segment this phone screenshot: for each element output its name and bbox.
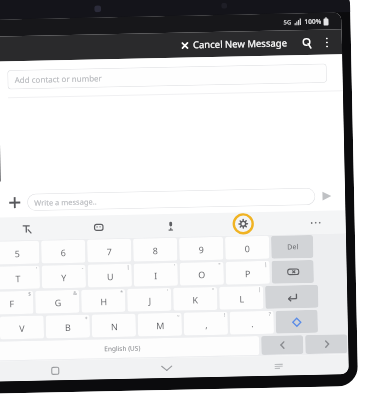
- button[interactable]: B: [46, 315, 90, 338]
- button[interactable]: Keyboard settings: [232, 213, 254, 234]
- staticText: !: [224, 312, 226, 319]
- button[interactable]: Write a message..: [27, 188, 315, 211]
- button[interactable]: F: [0, 291, 34, 315]
- staticText: 100%: [304, 17, 322, 26]
- button[interactable]: Del: [271, 235, 313, 259]
- button[interactable]: .: [230, 311, 274, 335]
- button[interactable]: Y: [42, 265, 86, 289]
- staticText: Del: [287, 242, 298, 252]
- staticText: 6: [60, 246, 66, 258]
- staticText: Write a message..: [34, 196, 97, 208]
- staticText: L: [239, 292, 244, 304]
- staticText: 5G: [283, 18, 292, 26]
- staticText: 7: [106, 245, 112, 257]
- button[interactable]: Recent apps: [222, 354, 335, 377]
- staticText: *: [120, 289, 123, 296]
- button[interactable]: ,: [184, 312, 228, 336]
- staticText: Add contact or number: [14, 72, 103, 85]
- button[interactable]: G: [35, 290, 80, 314]
- staticText: V: [19, 322, 25, 334]
- staticText: J: [148, 294, 151, 306]
- staticText: U: [107, 270, 114, 282]
- staticText: ": [218, 262, 222, 269]
- staticText: O: [198, 268, 206, 280]
- button[interactable]: 5: [0, 241, 39, 264]
- button[interactable]: 0: [225, 236, 269, 260]
- staticText: ~: [177, 313, 180, 320]
- button[interactable]: P: [225, 261, 270, 285]
- staticText: .: [251, 317, 254, 329]
- staticText: 5: [14, 247, 20, 259]
- button[interactable]: 7: [87, 239, 131, 263]
- button[interactable]: J: [127, 288, 172, 312]
- button[interactable]: Add contact or number: [7, 64, 327, 89]
- staticText: G: [54, 296, 61, 308]
- staticText: ": [212, 287, 215, 294]
- button[interactable]: Voice input: [160, 216, 181, 236]
- staticText: |: [264, 261, 268, 268]
- staticText: ': [173, 263, 176, 270]
- button[interactable]: More keyboard options: [305, 213, 326, 233]
- button[interactable]: [276, 310, 318, 334]
- button[interactable]: More options: [317, 32, 337, 53]
- staticText: B: [65, 321, 71, 333]
- staticText: N: [111, 320, 118, 332]
- button[interactable]: T: [0, 266, 40, 289]
- button[interactable]: K: [173, 287, 218, 311]
- staticText: 8: [152, 244, 158, 256]
- button[interactable]: L: [219, 286, 263, 310]
- staticText: Cancel New Message: [193, 36, 287, 51]
- button[interactable]: [271, 260, 314, 284]
- button[interactable]: Cancel New Message: [177, 33, 291, 55]
- button[interactable]: Home: [0, 359, 111, 381]
- button[interactable]: Search: [297, 33, 317, 53]
- staticText: H: [100, 295, 107, 307]
- button[interactable]: 6: [41, 240, 85, 264]
- button[interactable]: 9: [179, 237, 223, 261]
- button[interactable]: M: [138, 313, 182, 337]
- staticText: ': [36, 266, 38, 273]
- staticText: F: [9, 297, 14, 309]
- staticText: $: [28, 291, 31, 298]
- button[interactable]: 8: [133, 238, 177, 262]
- button[interactable]: Stickers: [89, 217, 109, 238]
- button[interactable]: I: [133, 263, 178, 287]
- staticText: I: [154, 269, 158, 281]
- staticText: |: [258, 286, 261, 293]
- staticText: M: [156, 319, 165, 331]
- button[interactable]: U: [87, 264, 132, 288]
- staticText: +: [85, 315, 88, 322]
- staticText: -: [81, 265, 84, 272]
- button[interactable]: [305, 334, 347, 354]
- staticText: 0: [244, 242, 250, 254]
- staticText: P: [245, 267, 251, 279]
- button[interactable]: Send: [315, 184, 337, 207]
- staticText: English (US): [104, 343, 141, 353]
- button[interactable]: H: [81, 289, 126, 313]
- staticText: K: [192, 293, 198, 305]
- button[interactable]: Hide keyboard: [110, 357, 223, 379]
- staticText: ': [167, 288, 169, 295]
- button[interactable]: O: [179, 262, 224, 286]
- staticText: ,: [205, 318, 208, 330]
- staticText: 9: [198, 243, 204, 255]
- staticText: Y: [61, 271, 67, 283]
- button[interactable]: English (US): [0, 336, 259, 361]
- staticText: &: [73, 290, 77, 297]
- staticText: T: [15, 272, 21, 284]
- button[interactable]: [265, 285, 318, 309]
- staticText: ?: [269, 311, 272, 318]
- button[interactable]: [261, 335, 303, 355]
- button[interactable]: V: [0, 315, 44, 339]
- button[interactable]: Add attachment: [4, 192, 24, 212]
- button[interactable]: N: [92, 314, 136, 337]
- button[interactable]: Handwriting: [17, 219, 37, 239]
- staticText: |: [126, 264, 130, 271]
